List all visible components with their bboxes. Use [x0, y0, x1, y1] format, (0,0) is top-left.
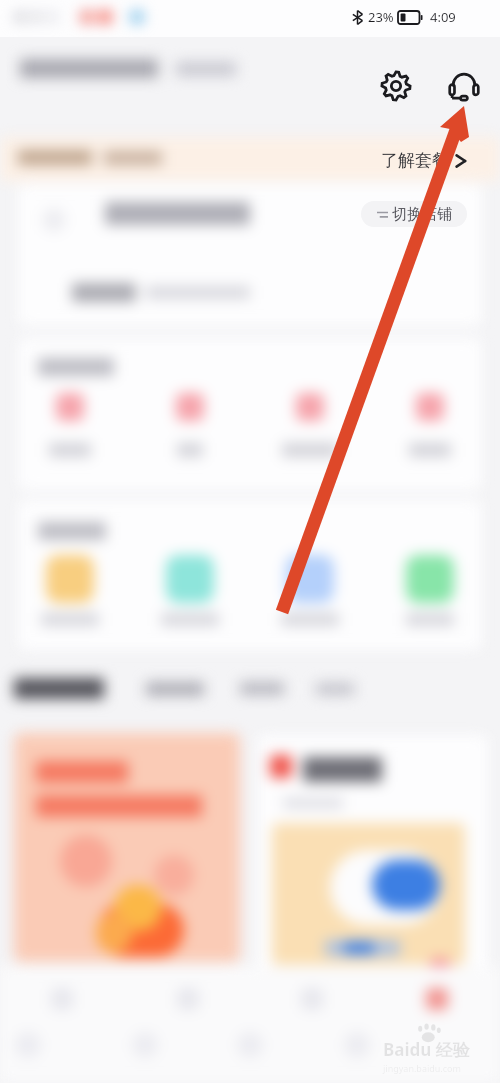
button[interactable] [387, 972, 487, 1026]
button[interactable] [258, 393, 362, 457]
button[interactable] [14, 678, 104, 699]
staticText: 了解套餐 [381, 150, 449, 171]
staticText: Baidu 经验 [383, 1038, 470, 1061]
button[interactable] [138, 555, 242, 626]
button[interactable] [18, 393, 122, 457]
button[interactable]: Settings [375, 65, 417, 107]
button[interactable] [240, 682, 284, 695]
button[interactable] [18, 184, 482, 326]
button[interactable] [138, 972, 238, 1026]
staticText: jingyan.baidu.com [383, 1062, 461, 1074]
staticText: 4:09 [430, 8, 456, 26]
staticText: 切换店铺 [392, 205, 452, 224]
staticText: 23% [368, 8, 394, 26]
button[interactable] [138, 393, 242, 457]
button[interactable] [258, 735, 488, 970]
button[interactable] [14, 733, 240, 962]
button[interactable] [378, 555, 482, 626]
button[interactable]: Customer service [441, 63, 487, 109]
button[interactable] [18, 555, 122, 626]
button[interactable] [378, 393, 482, 457]
button[interactable] [262, 972, 362, 1026]
button[interactable]: 了解套餐 [381, 150, 468, 171]
button[interactable] [258, 555, 362, 626]
button[interactable] [146, 682, 204, 696]
button[interactable] [316, 683, 354, 695]
button[interactable]: 切换店铺 [361, 201, 467, 227]
button[interactable] [12, 972, 112, 1026]
